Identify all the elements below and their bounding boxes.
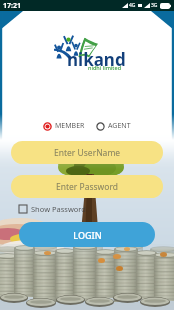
staticText: Enter Password <box>56 181 119 193</box>
staticText: Show Password <box>31 204 86 214</box>
staticText: AGENT <box>108 121 131 131</box>
button[interactable]: Enter UserName <box>11 141 163 164</box>
staticText: 4G <box>129 2 136 9</box>
staticText: MEMBER <box>55 121 85 131</box>
staticText: nikand <box>67 48 126 71</box>
staticText: 3G <box>151 2 158 9</box>
button[interactable]: AGENT <box>94 120 133 132</box>
button[interactable]: LOGIN <box>19 222 155 247</box>
staticText: Enter UserName <box>54 147 121 159</box>
button[interactable]: Show Password <box>17 202 88 216</box>
button[interactable]: Enter Password <box>11 175 163 198</box>
staticText: 17:21 <box>3 1 21 11</box>
staticText: LOGIN <box>73 229 102 241</box>
staticText: nidhi limited <box>88 64 122 71</box>
button[interactable]: MEMBER <box>41 120 87 132</box>
